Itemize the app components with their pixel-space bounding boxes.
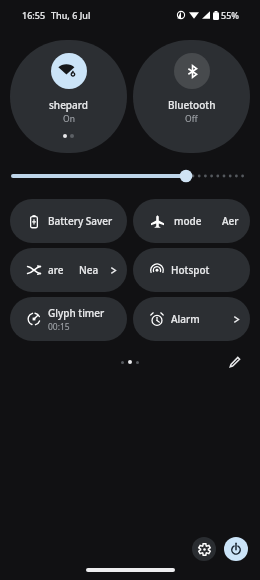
staticText: are xyxy=(48,263,64,277)
button[interactable]: Alarm xyxy=(133,297,250,341)
button[interactable]: Settings xyxy=(192,537,216,561)
button[interactable]: Hotspot xyxy=(133,248,250,292)
staticText: mode xyxy=(174,214,202,228)
button[interactable]: Battery Saver xyxy=(10,199,127,243)
staticText: Aer xyxy=(222,214,239,228)
staticText: 00:15 xyxy=(48,321,70,333)
button[interactable]: Glyph timer xyxy=(10,297,127,341)
staticText: 55% xyxy=(221,9,239,21)
button[interactable]: Edit tiles xyxy=(228,355,242,369)
button[interactable]: Bluetooth xyxy=(133,40,250,153)
staticText: Nea xyxy=(79,263,99,277)
button[interactable]: shepard xyxy=(10,40,127,153)
staticText: Bluetooth xyxy=(168,98,216,112)
staticText: Glyph timer xyxy=(48,306,105,320)
button[interactable]: Brightness xyxy=(0,166,260,186)
button[interactable]: Power xyxy=(224,537,248,561)
staticText: 16:55 xyxy=(22,9,46,21)
staticText: Battery Saver xyxy=(48,214,113,228)
staticText: Thu, 6 Jul xyxy=(51,9,91,21)
button[interactable]: mode xyxy=(133,199,250,243)
staticText: On xyxy=(63,113,75,125)
staticText: Alarm xyxy=(171,312,200,326)
staticText: Off xyxy=(185,113,198,125)
button[interactable]: are xyxy=(10,248,127,292)
staticText: shepard xyxy=(49,98,89,112)
staticText: Hotspot xyxy=(171,263,210,277)
